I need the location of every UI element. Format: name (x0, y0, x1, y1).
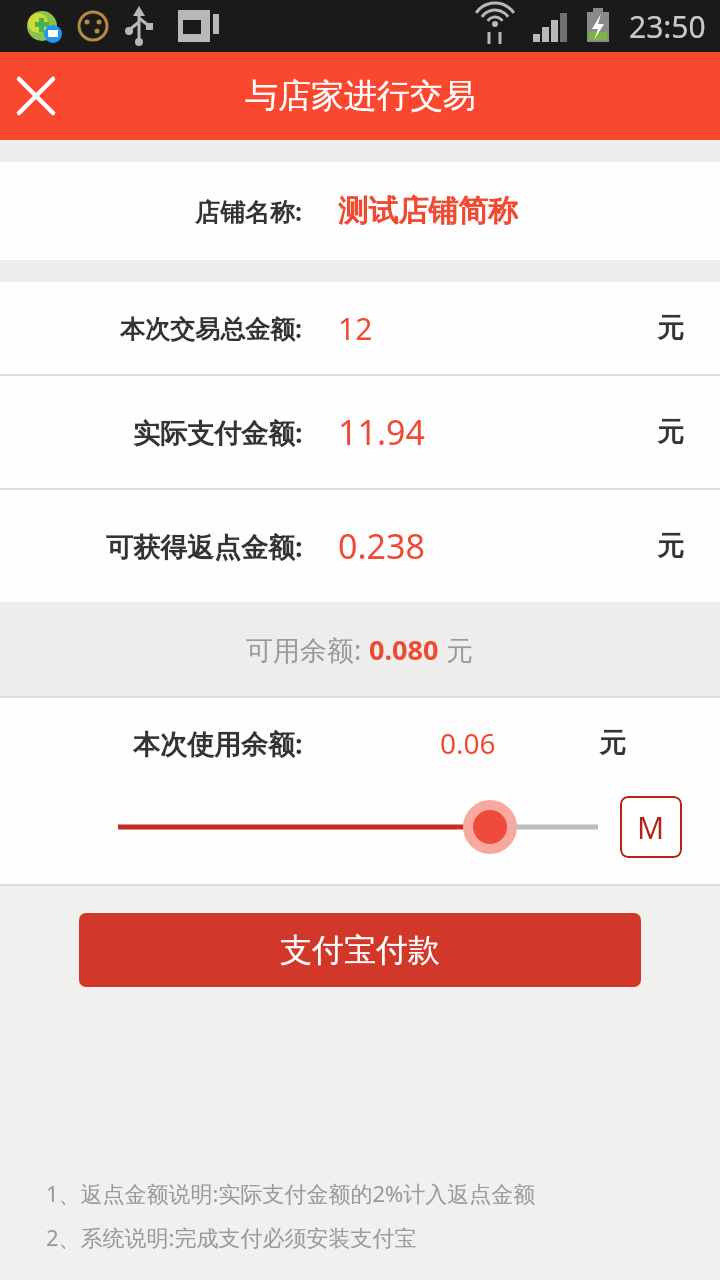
staticText: 元 (657, 415, 684, 449)
staticText: 元 (599, 726, 626, 760)
staticText: 元 (439, 631, 474, 668)
staticText: 元 (657, 529, 684, 563)
staticText: 11.94 (338, 409, 425, 455)
staticText: 可用余额: (246, 631, 369, 668)
button[interactable]: Close (0, 60, 72, 132)
button[interactable]: 可获得返点金额: (0, 490, 720, 602)
staticText: 店铺名称: (195, 194, 303, 228)
staticText: 0.06 (440, 724, 496, 762)
staticText: 0.080 (369, 631, 439, 668)
staticText: 23:50 (629, 6, 706, 47)
button[interactable]: 实际支付金额: (0, 376, 720, 488)
staticText: 测试店铺简称 (338, 192, 518, 230)
button[interactable]: 支付宝付款 (79, 913, 641, 987)
staticText: 本次使用余额: (133, 725, 303, 762)
staticText: 元 (657, 311, 684, 345)
button[interactable]: 店铺名称: (0, 162, 720, 260)
button[interactable]: Max (620, 796, 682, 858)
staticText: 支付宝付款 (280, 930, 440, 970)
staticText: 实际支付金额: (133, 414, 303, 451)
button[interactable]: 本次交易总金额: (0, 282, 720, 374)
staticText: 2、系统说明:完成支付必须安装支付宝 (46, 1222, 417, 1252)
button[interactable]: Balance amount slider (118, 792, 598, 862)
staticText: 12 (338, 308, 373, 349)
staticText: 可获得返点金额: (106, 528, 303, 565)
staticText: 与店家进行交易 (245, 75, 476, 117)
staticText: 本次交易总金额: (120, 311, 303, 345)
staticText: 0.238 (338, 523, 425, 569)
staticText: 1、返点金额说明:实际支付金额的2%计入返点金额 (46, 1178, 536, 1208)
staticText: M (637, 807, 665, 848)
